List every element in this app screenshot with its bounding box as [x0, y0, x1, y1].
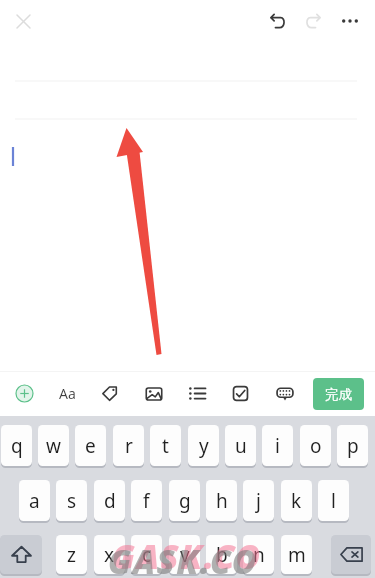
staticText: u — [235, 433, 247, 459]
staticText: z — [67, 542, 76, 568]
button[interactable]: r — [113, 425, 144, 466]
button[interactable]: Tag — [96, 380, 123, 407]
button[interactable]: Shift — [0, 535, 42, 574]
staticText: x — [104, 542, 115, 568]
button[interactable]: Keyboard — [271, 380, 298, 407]
button[interactable]: z — [56, 535, 87, 574]
staticText: GASK.CO — [112, 534, 262, 578]
button[interactable]: q — [1, 425, 32, 466]
button[interactable]: f — [131, 480, 162, 521]
staticText: GASK.CO — [108, 539, 258, 578]
staticText: y — [199, 433, 209, 459]
button[interactable]: k — [281, 480, 312, 521]
button[interactable]: p — [337, 425, 368, 466]
button[interactable]: n — [243, 535, 274, 574]
staticText: t — [162, 433, 169, 459]
button[interactable]: Undo — [264, 7, 292, 35]
button[interactable]: Bulleted list — [184, 380, 211, 407]
button[interactable]: b — [206, 535, 237, 574]
staticText: h — [216, 488, 228, 514]
staticText: 完成 — [325, 386, 352, 403]
button[interactable]: v — [169, 535, 200, 574]
staticText: r — [125, 433, 133, 459]
button[interactable]: Add — [11, 380, 38, 407]
button[interactable]: Checklist — [227, 380, 254, 407]
staticText: n — [253, 542, 265, 568]
staticText: c — [142, 542, 152, 568]
button[interactable]: Text format — [54, 380, 81, 407]
staticText: v — [180, 542, 190, 568]
staticText: e — [85, 433, 96, 459]
staticText: d — [104, 488, 116, 514]
staticText: a — [29, 488, 40, 514]
button[interactable]: Backspace — [331, 535, 371, 574]
button[interactable]: s — [56, 480, 87, 521]
button[interactable]: h — [206, 480, 237, 521]
staticText: l — [331, 488, 336, 514]
staticText: j — [256, 488, 261, 514]
button[interactable]: m — [281, 535, 312, 574]
button[interactable]: i — [262, 425, 293, 466]
staticText: s — [67, 488, 77, 514]
staticText: o — [310, 433, 322, 459]
button[interactable]: w — [38, 425, 69, 466]
button[interactable]: t — [150, 425, 181, 466]
staticText: Aa — [59, 384, 76, 403]
button[interactable]: l — [318, 480, 349, 521]
button[interactable]: u — [225, 425, 256, 466]
button[interactable]: y — [188, 425, 219, 466]
button[interactable]: d — [94, 480, 125, 521]
staticText: k — [291, 488, 302, 514]
button[interactable]: e — [75, 425, 106, 466]
button[interactable]: o — [300, 425, 331, 466]
staticText: w — [46, 433, 61, 459]
button[interactable]: c — [131, 535, 162, 574]
button[interactable]: 完成 — [313, 378, 364, 410]
staticText: f — [143, 488, 150, 514]
button[interactable]: j — [243, 480, 274, 521]
button[interactable]: x — [94, 535, 125, 574]
button[interactable]: More options — [336, 7, 364, 35]
staticText: m — [288, 542, 306, 568]
button[interactable]: Close — [9, 7, 37, 35]
button[interactable]: a — [19, 480, 50, 521]
button[interactable]: Insert image — [140, 380, 167, 407]
staticText: i — [275, 433, 280, 459]
button[interactable]: Redo — [298, 7, 326, 35]
staticText: q — [11, 433, 23, 459]
button[interactable]: g — [169, 480, 200, 521]
staticText: b — [216, 542, 228, 568]
staticText: g — [179, 488, 191, 514]
staticText: p — [347, 433, 359, 459]
